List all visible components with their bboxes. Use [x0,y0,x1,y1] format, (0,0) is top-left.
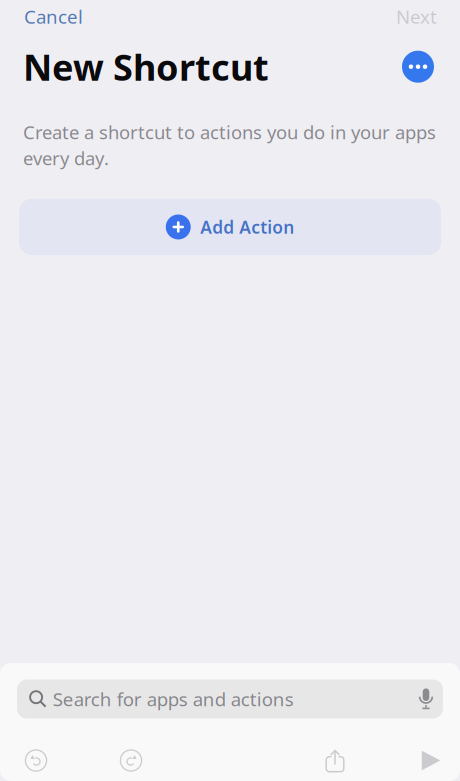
button[interactable]: Undo [14,746,58,774]
staticText: Add Action [200,215,294,238]
button[interactable]: Cancel [24,4,83,29]
button[interactable]: Next [396,4,437,29]
button[interactable]: Run shortcut [409,746,453,774]
staticText: Create a shortcut to actions you do in y… [23,120,436,171]
button[interactable]: Redo [109,746,153,774]
button[interactable]: Add Action [19,199,441,255]
staticText: Next [396,4,437,29]
button[interactable]: More options [402,51,434,83]
button[interactable]: Share [313,746,357,774]
staticText: New Shortcut [23,43,269,91]
staticText: Search for apps and actions [53,687,294,711]
staticText: Cancel [24,4,83,29]
